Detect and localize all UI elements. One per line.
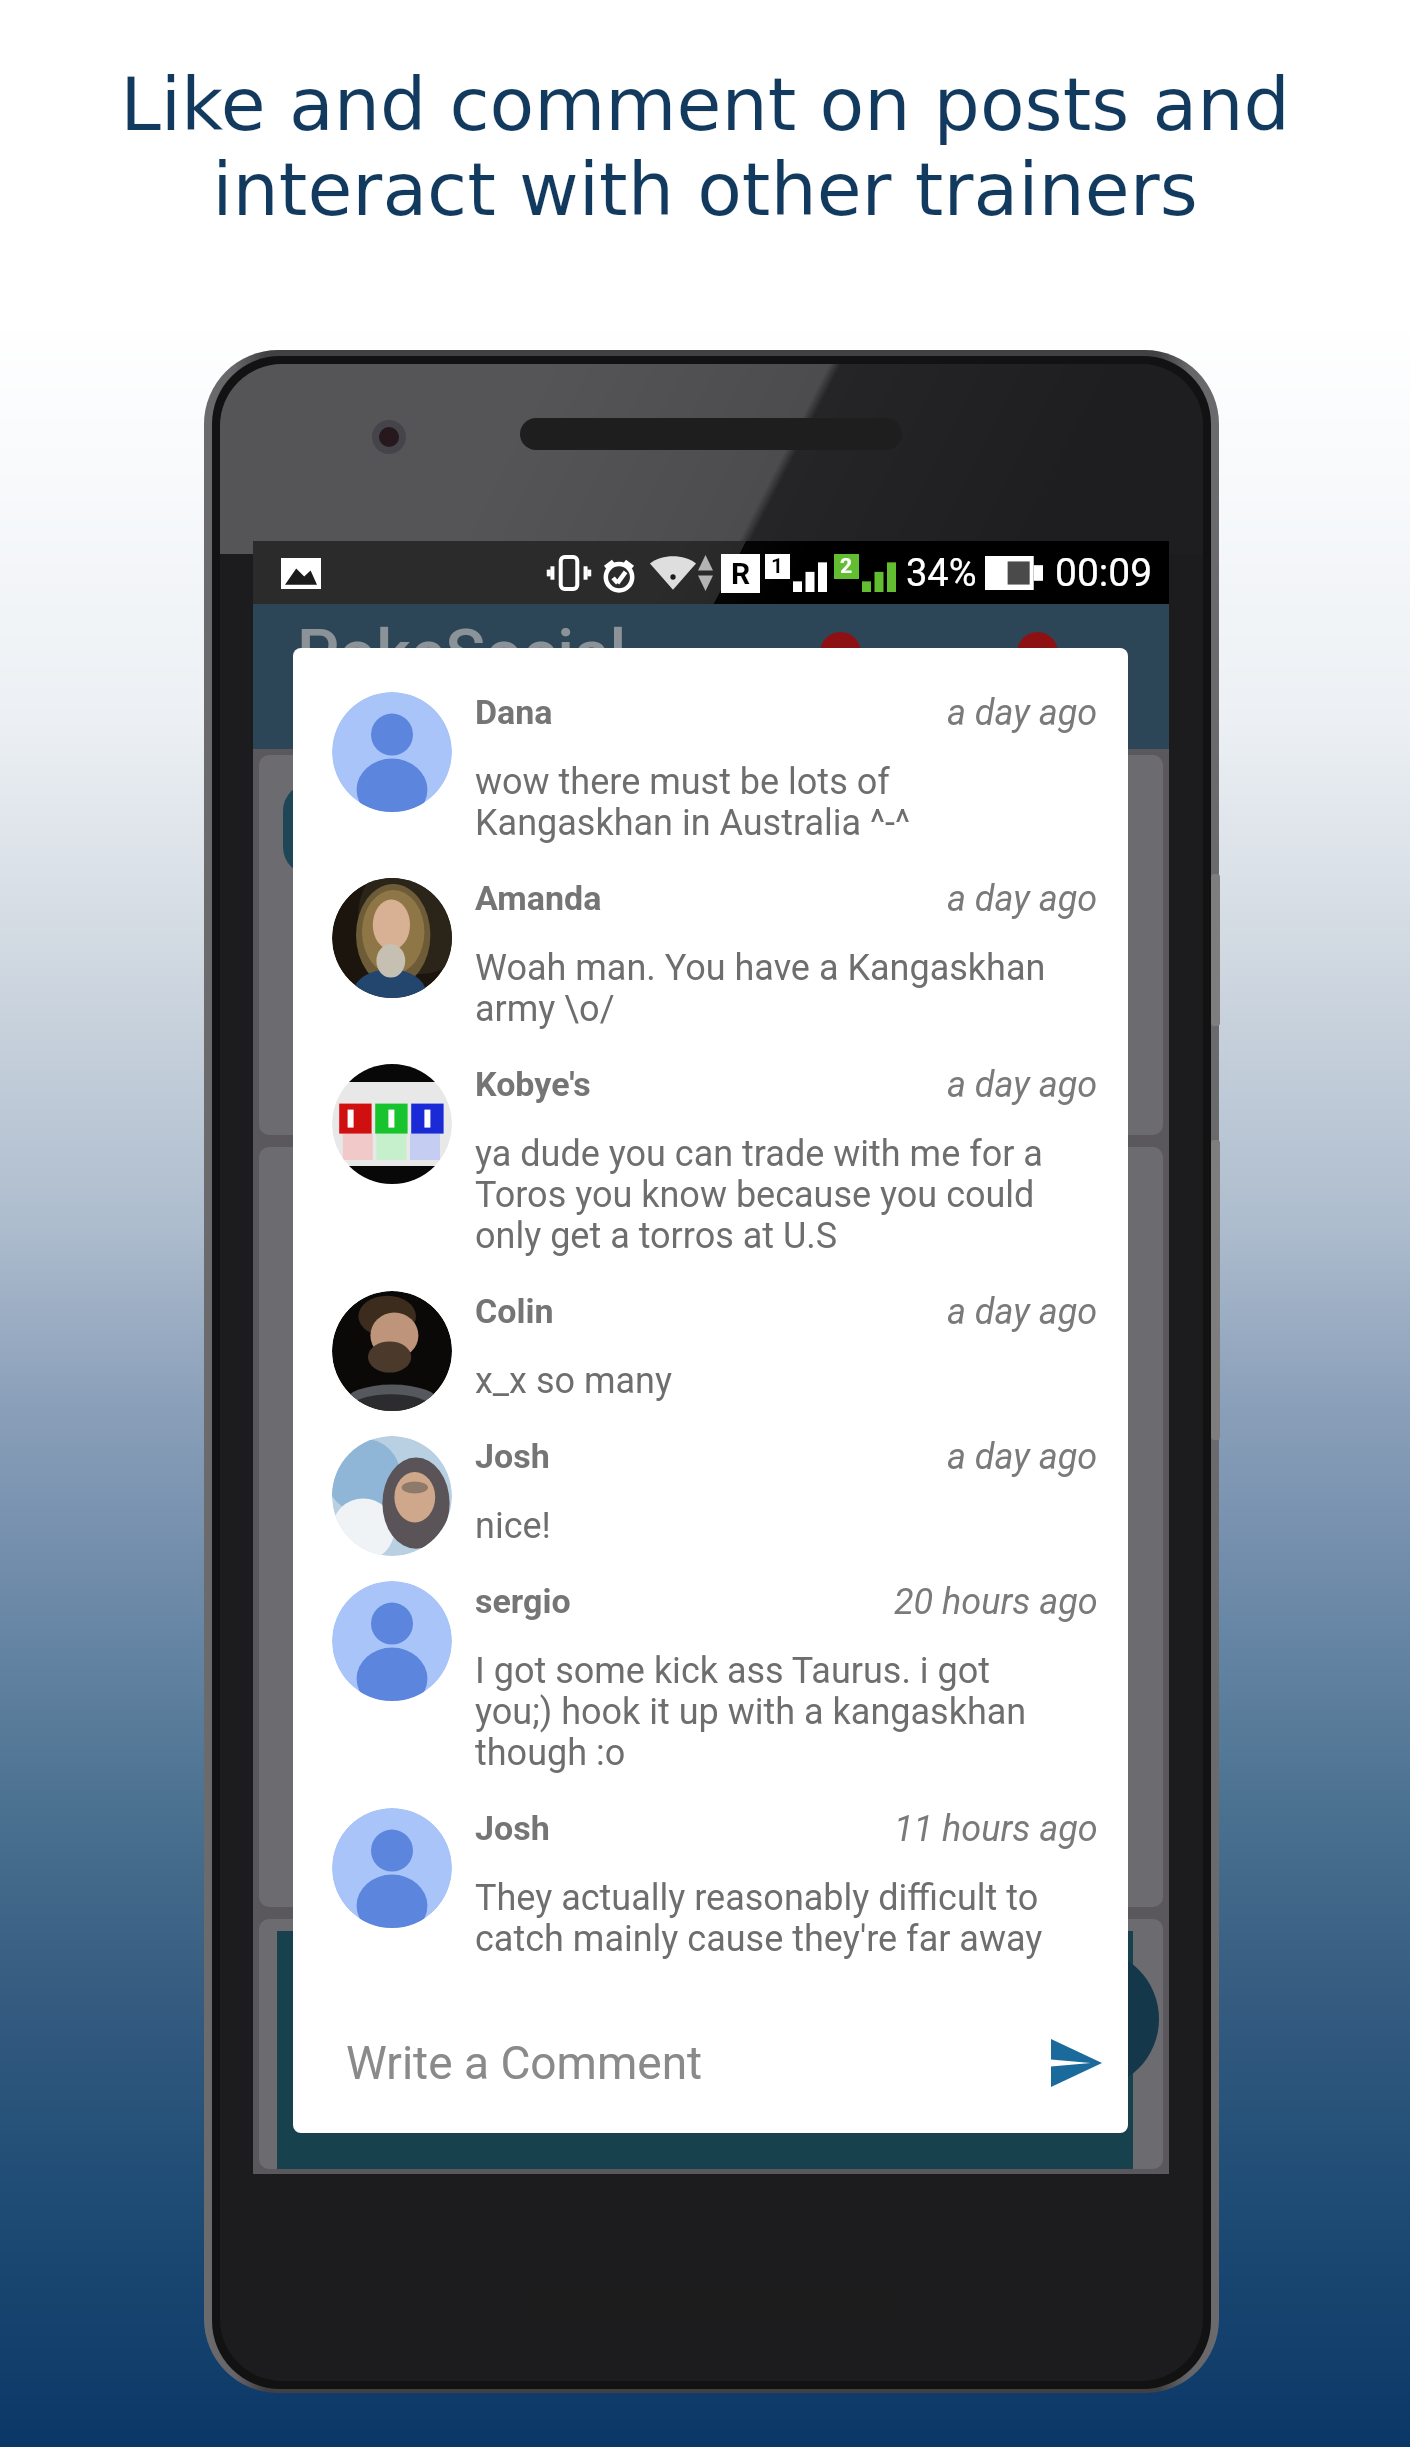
staticText: PokeSocial [297, 616, 627, 693]
staticText: wow there must be lots of Kangaskhan in … [475, 761, 911, 844]
staticText: a day ago [947, 692, 1098, 734]
staticText: Amanda [475, 878, 602, 918]
staticText: a day ago [947, 878, 1098, 920]
staticText: a day ago [947, 1291, 1098, 1333]
staticText: Dana [475, 692, 553, 732]
button[interactable]: Josh [293, 1808, 1128, 1994]
staticText: 2 [840, 554, 853, 579]
staticText: 00:09 [1055, 550, 1153, 596]
staticText: R [731, 556, 751, 591]
staticText: Josh [475, 1808, 550, 1848]
button[interactable]: Colin [293, 1291, 1128, 1436]
staticText: They actually reasonably difficult to ca… [475, 1877, 1043, 1960]
staticText: 34% [906, 551, 977, 596]
button[interactable]: sergio [293, 1581, 1128, 1808]
staticText: ya dude you can trade with me for a Toro… [475, 1133, 1043, 1257]
staticText: Woah man. You have a Kangaskhan army \o/ [475, 947, 1046, 1030]
button[interactable]: Dana [293, 692, 1128, 878]
staticText: Colin [475, 1291, 554, 1331]
staticText: 1 [771, 554, 784, 579]
button[interactable]: Write a Comment [293, 1965, 1128, 2133]
staticText: sergio [475, 1581, 571, 1621]
staticText: a day ago [947, 1064, 1098, 1106]
other: Send [1051, 2039, 1102, 2087]
staticText: x_x so many [475, 1360, 672, 1402]
staticText: Like and comment on posts and interact w… [0, 62, 1410, 232]
staticText: I got some kick ass Taurus. i got you;) … [475, 1650, 1027, 1774]
button[interactable]: Amanda [293, 878, 1128, 1064]
button[interactable]: Kobye's [293, 1064, 1128, 1291]
staticText: nice! [475, 1505, 551, 1547]
staticText: Kobye's [475, 1064, 591, 1104]
staticText: Write a Comment [346, 2036, 703, 2090]
staticText: 20 hours ago [894, 1581, 1098, 1623]
staticText: a day ago [947, 1436, 1098, 1478]
staticText: 11 hours ago [894, 1808, 1098, 1850]
staticText: Josh [475, 1436, 550, 1476]
button[interactable]: Josh [293, 1436, 1128, 1581]
